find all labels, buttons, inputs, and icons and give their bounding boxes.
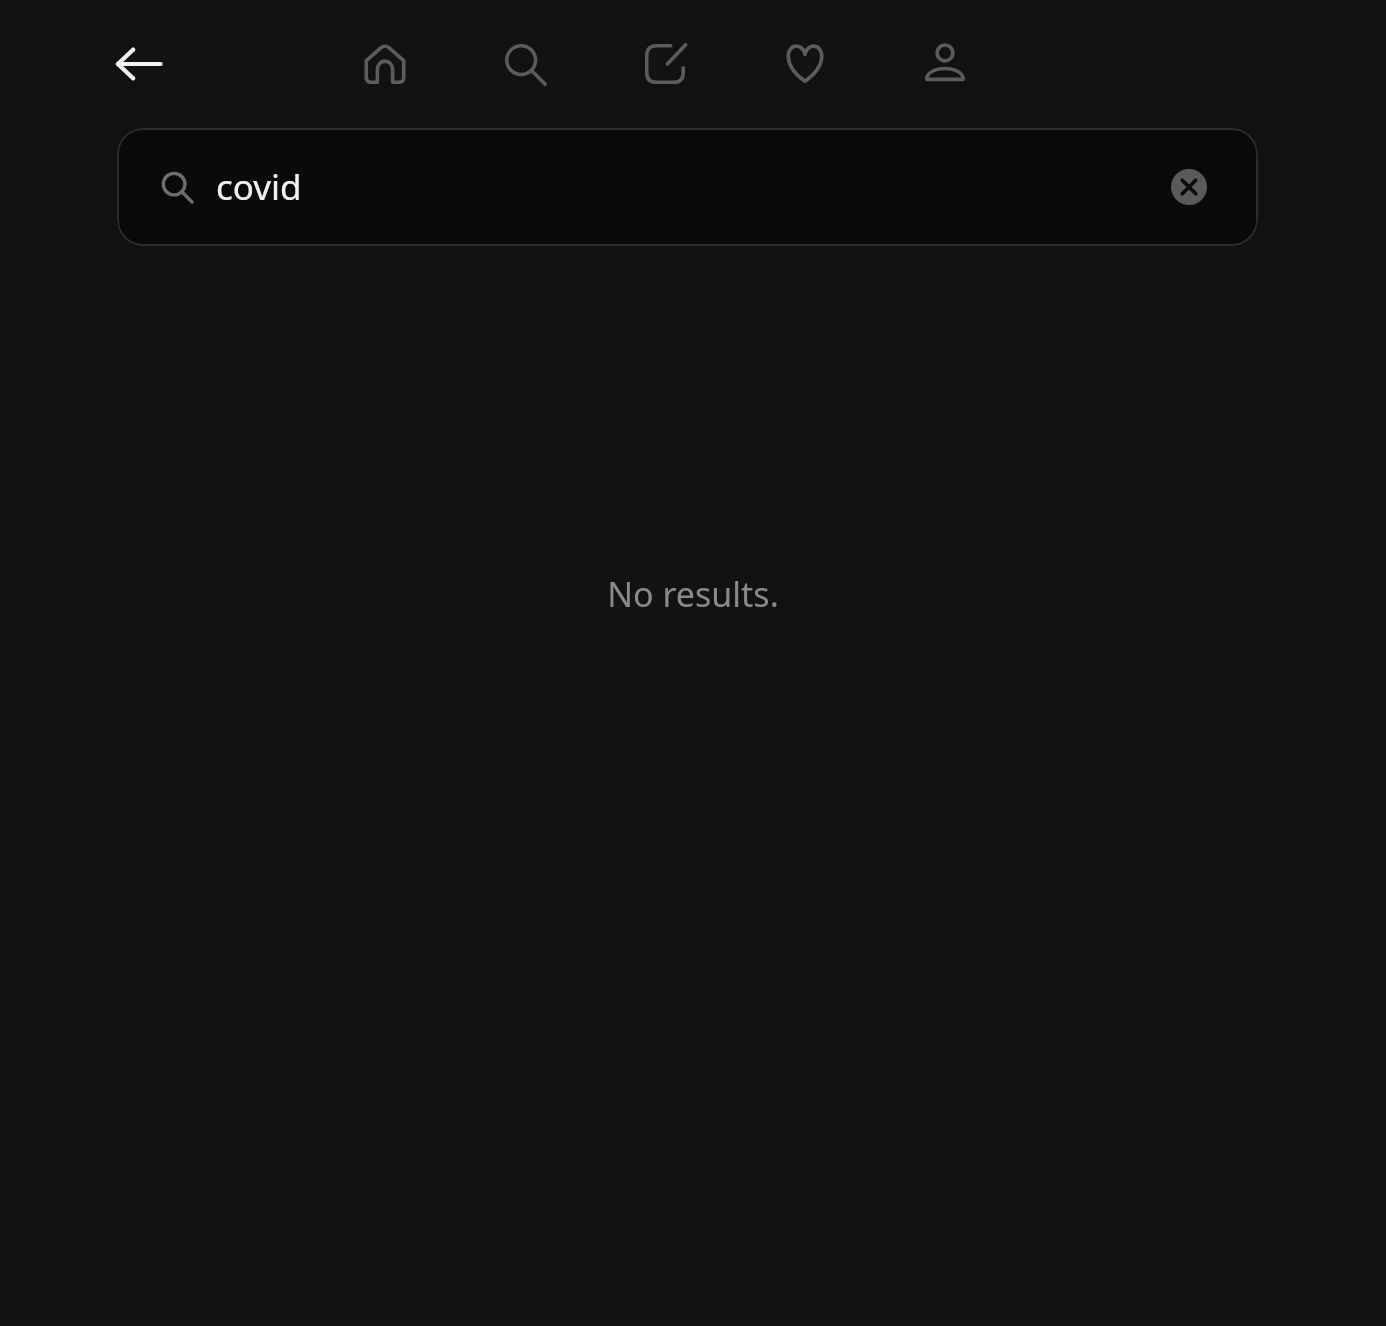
button[interactable]: Clear search xyxy=(1166,164,1212,210)
button[interactable]: Compose xyxy=(630,29,700,99)
button[interactable]: Likes xyxy=(770,29,840,99)
button[interactable]: covid xyxy=(117,128,1258,246)
button[interactable]: Search xyxy=(490,29,560,99)
button[interactable]: Home xyxy=(350,29,420,99)
staticText: covid xyxy=(216,163,302,211)
staticText: No results. xyxy=(607,571,779,617)
button[interactable]: Back xyxy=(104,29,174,99)
button[interactable]: Profile xyxy=(910,29,980,99)
